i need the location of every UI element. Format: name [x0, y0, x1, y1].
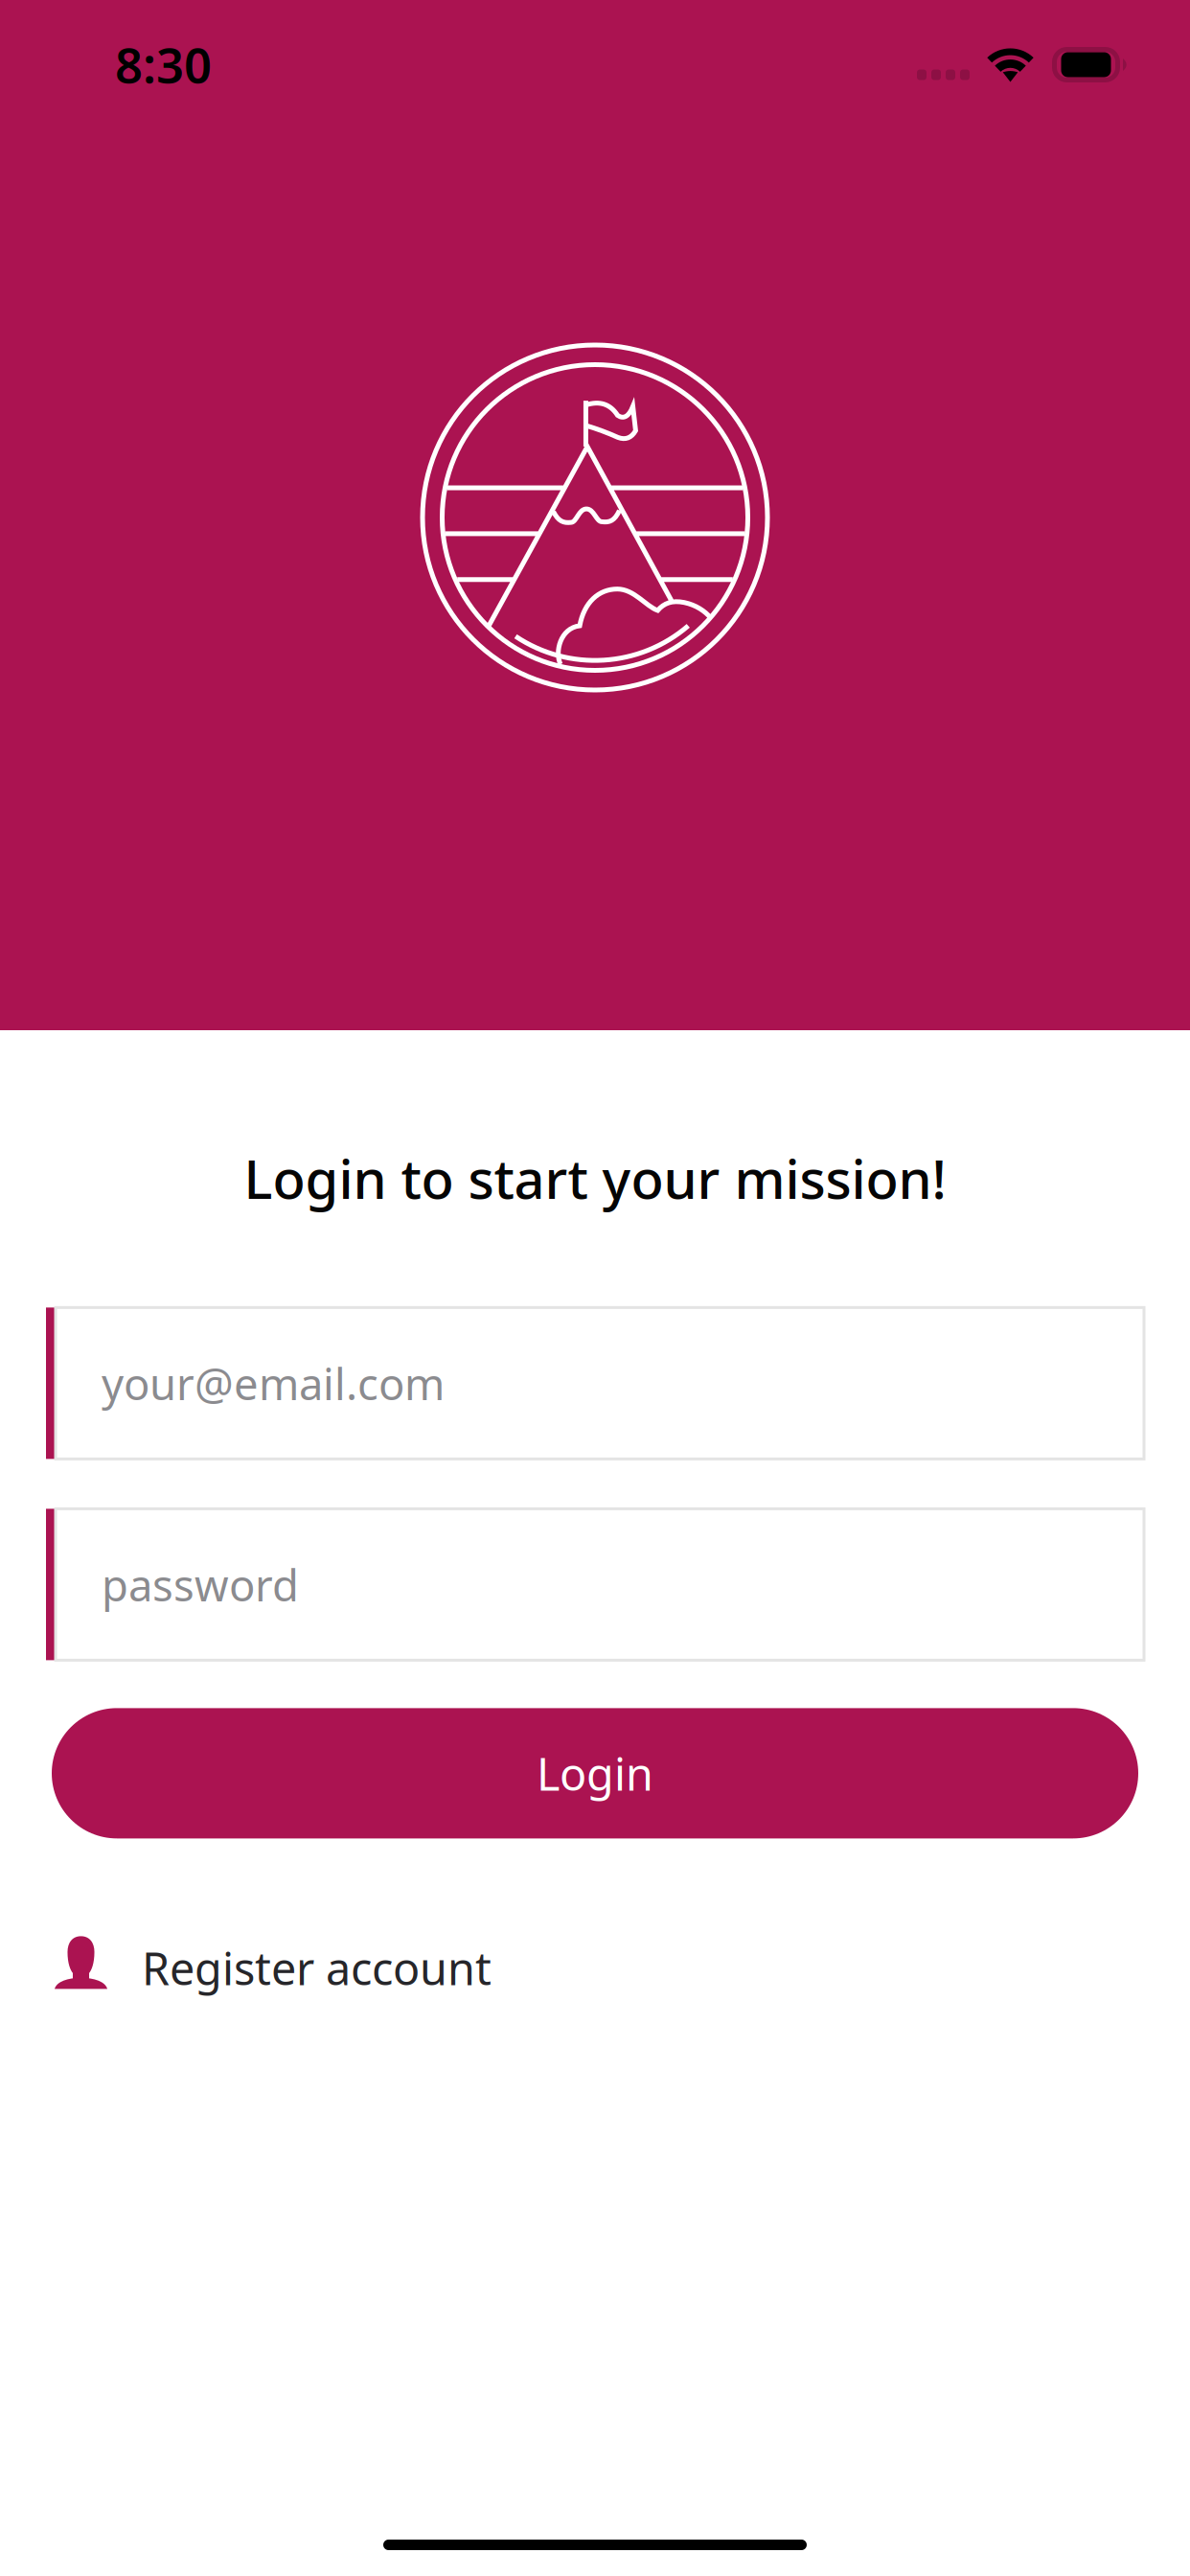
staticText: your@email.com [102, 1354, 445, 1412]
button[interactable]: your@email.com [46, 1308, 1144, 1459]
staticText: 8:30 [115, 32, 212, 97]
button[interactable]: Login [46, 1708, 1144, 1838]
staticText: Register account [142, 1938, 492, 1998]
staticText: password [102, 1556, 299, 1613]
button[interactable]: password [46, 1509, 1144, 1660]
button[interactable]: Register account [46, 1939, 1144, 1997]
staticText: Login to start your mission! [244, 1142, 946, 1214]
staticText: Login [537, 1744, 653, 1803]
